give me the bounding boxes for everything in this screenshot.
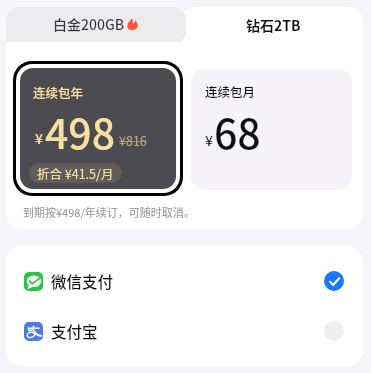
- staticText: 连续包月: [205, 82, 256, 100]
- other: Not selected: [324, 321, 344, 341]
- staticText: 钻石2TB: [246, 15, 301, 35]
- staticText: 白金200GB: [53, 14, 125, 34]
- button[interactable]: 白金200GB: [6, 7, 186, 43]
- button[interactable]: 支付宝: [6, 306, 363, 356]
- staticText: ¥: [35, 128, 43, 148]
- staticText: 支付宝: [51, 320, 98, 342]
- other: Selected: [324, 271, 344, 291]
- button[interactable]: 微信支付: [6, 256, 363, 306]
- staticText: 68: [214, 101, 261, 160]
- button[interactable]: 连续包月: [191, 69, 352, 190]
- staticText: 到期按¥498/年续订，可随时取消。: [23, 204, 195, 220]
- staticText: ¥816: [119, 131, 147, 149]
- staticText: ¥: [205, 130, 213, 150]
- staticText: 折合 ¥41.5/月: [37, 164, 114, 182]
- staticText: 微信支付: [51, 270, 114, 292]
- button[interactable]: 连续包年: [20, 68, 176, 189]
- staticText: 连续包年: [33, 83, 84, 101]
- staticText: 498: [45, 101, 116, 160]
- button[interactable]: 钻石2TB: [182, 7, 363, 44]
